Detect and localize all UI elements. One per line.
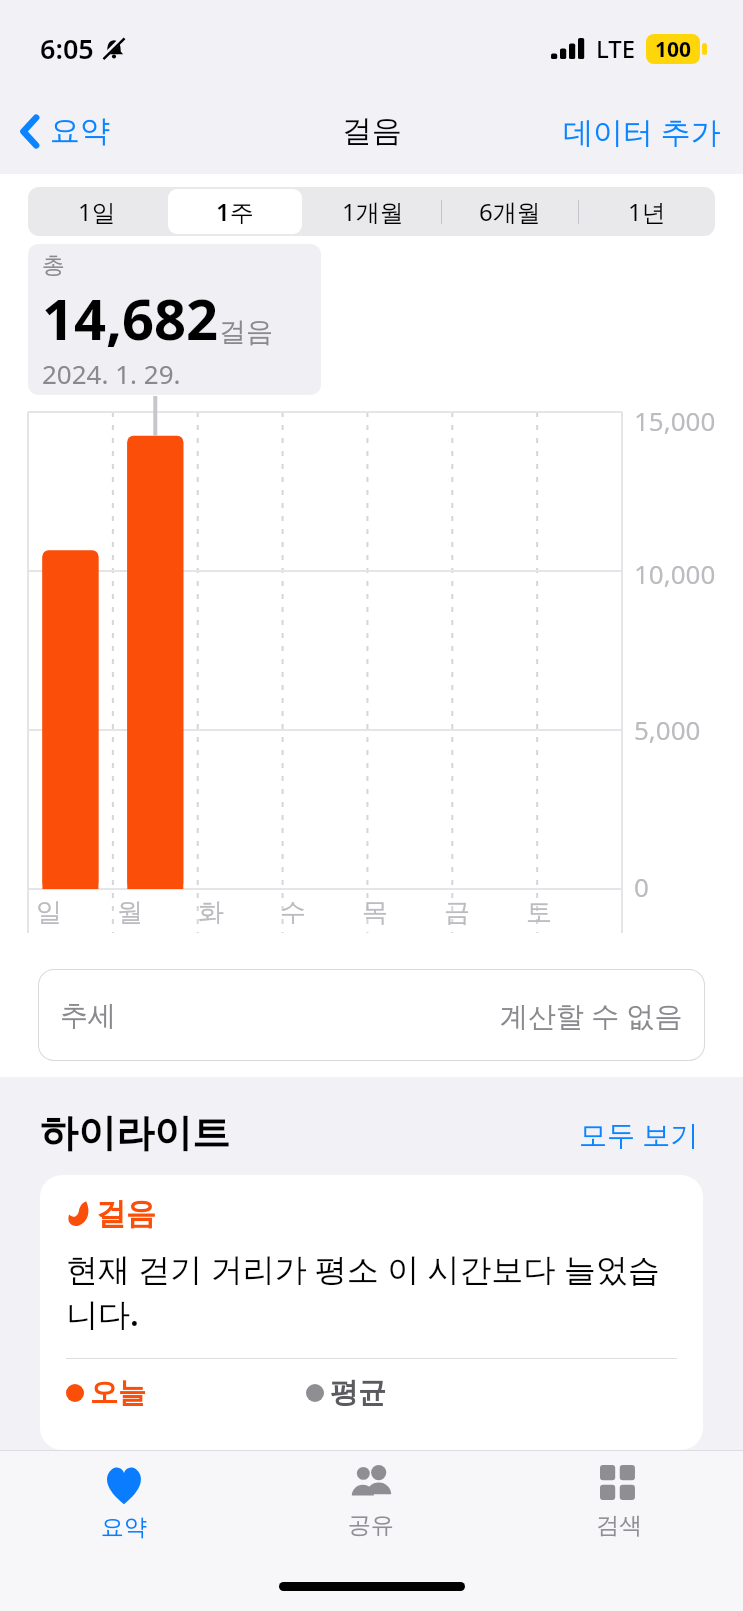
button[interactable]: 검색 (495, 1451, 743, 1569)
staticText: 10,000 (634, 556, 716, 591)
staticText: 1일 (78, 195, 116, 228)
staticText: 15,000 (634, 403, 716, 438)
button[interactable]: 공유 (247, 1451, 495, 1569)
button[interactable]: 6개월 (443, 189, 576, 234)
staticText: 데이터 추가 (563, 111, 721, 152)
staticText: 걸음 (219, 315, 273, 349)
staticText: 요약 (50, 112, 110, 150)
staticText: 추세 (60, 998, 116, 1033)
button[interactable]: 모두 보기 (575, 1111, 703, 1157)
staticText: 1개월 (342, 195, 404, 228)
staticText: 금 (444, 896, 470, 929)
button[interactable]: 요약 (10, 104, 120, 158)
staticText: 1년 (628, 195, 666, 228)
staticText: 검색 (596, 1511, 642, 1540)
staticText: 2024. 1. 29. (42, 356, 181, 391)
button[interactable]: 추세 (38, 969, 705, 1061)
staticText: 수 (280, 896, 306, 929)
staticText: 1주 (216, 195, 254, 228)
staticText: 오늘 (90, 1375, 146, 1410)
staticText: 현재 걷기 거리가 평소 이 시간보다 늘었습니다. (66, 1247, 677, 1336)
staticText: 6:05 (40, 30, 94, 67)
button[interactable]: 1년 (580, 189, 713, 234)
staticText: 공유 (348, 1511, 394, 1540)
staticText: 평균 (330, 1375, 386, 1410)
staticText: 6개월 (479, 195, 541, 228)
staticText: 5,000 (634, 712, 701, 747)
button[interactable]: 1주 (168, 189, 302, 234)
staticText: 모두 보기 (579, 1115, 699, 1153)
staticText: 하이라이트 (40, 1109, 230, 1157)
staticText: 총 (42, 251, 65, 280)
button[interactable]: 데이터 추가 (553, 103, 731, 160)
staticText: 목 (362, 896, 388, 929)
button[interactable]: 1일 (30, 189, 164, 234)
staticText: 걸음 (96, 1195, 156, 1233)
staticText: LTE (596, 32, 636, 65)
staticText: 요약 (101, 1513, 147, 1542)
staticText: 14,682 (42, 280, 219, 356)
staticText: 걸음 (342, 112, 402, 150)
button[interactable]: 걸음 (40, 1175, 703, 1450)
staticText: 화 (198, 896, 224, 929)
staticText: 일 (36, 896, 62, 929)
staticText: 100 (655, 35, 692, 64)
staticText: 토 (526, 896, 552, 929)
staticText: 계산할 수 없음 (500, 996, 683, 1034)
staticText: 0 (634, 869, 649, 904)
staticText: 월 (117, 896, 143, 929)
button[interactable]: 1개월 (306, 189, 439, 234)
button[interactable]: 요약 (0, 1451, 247, 1569)
